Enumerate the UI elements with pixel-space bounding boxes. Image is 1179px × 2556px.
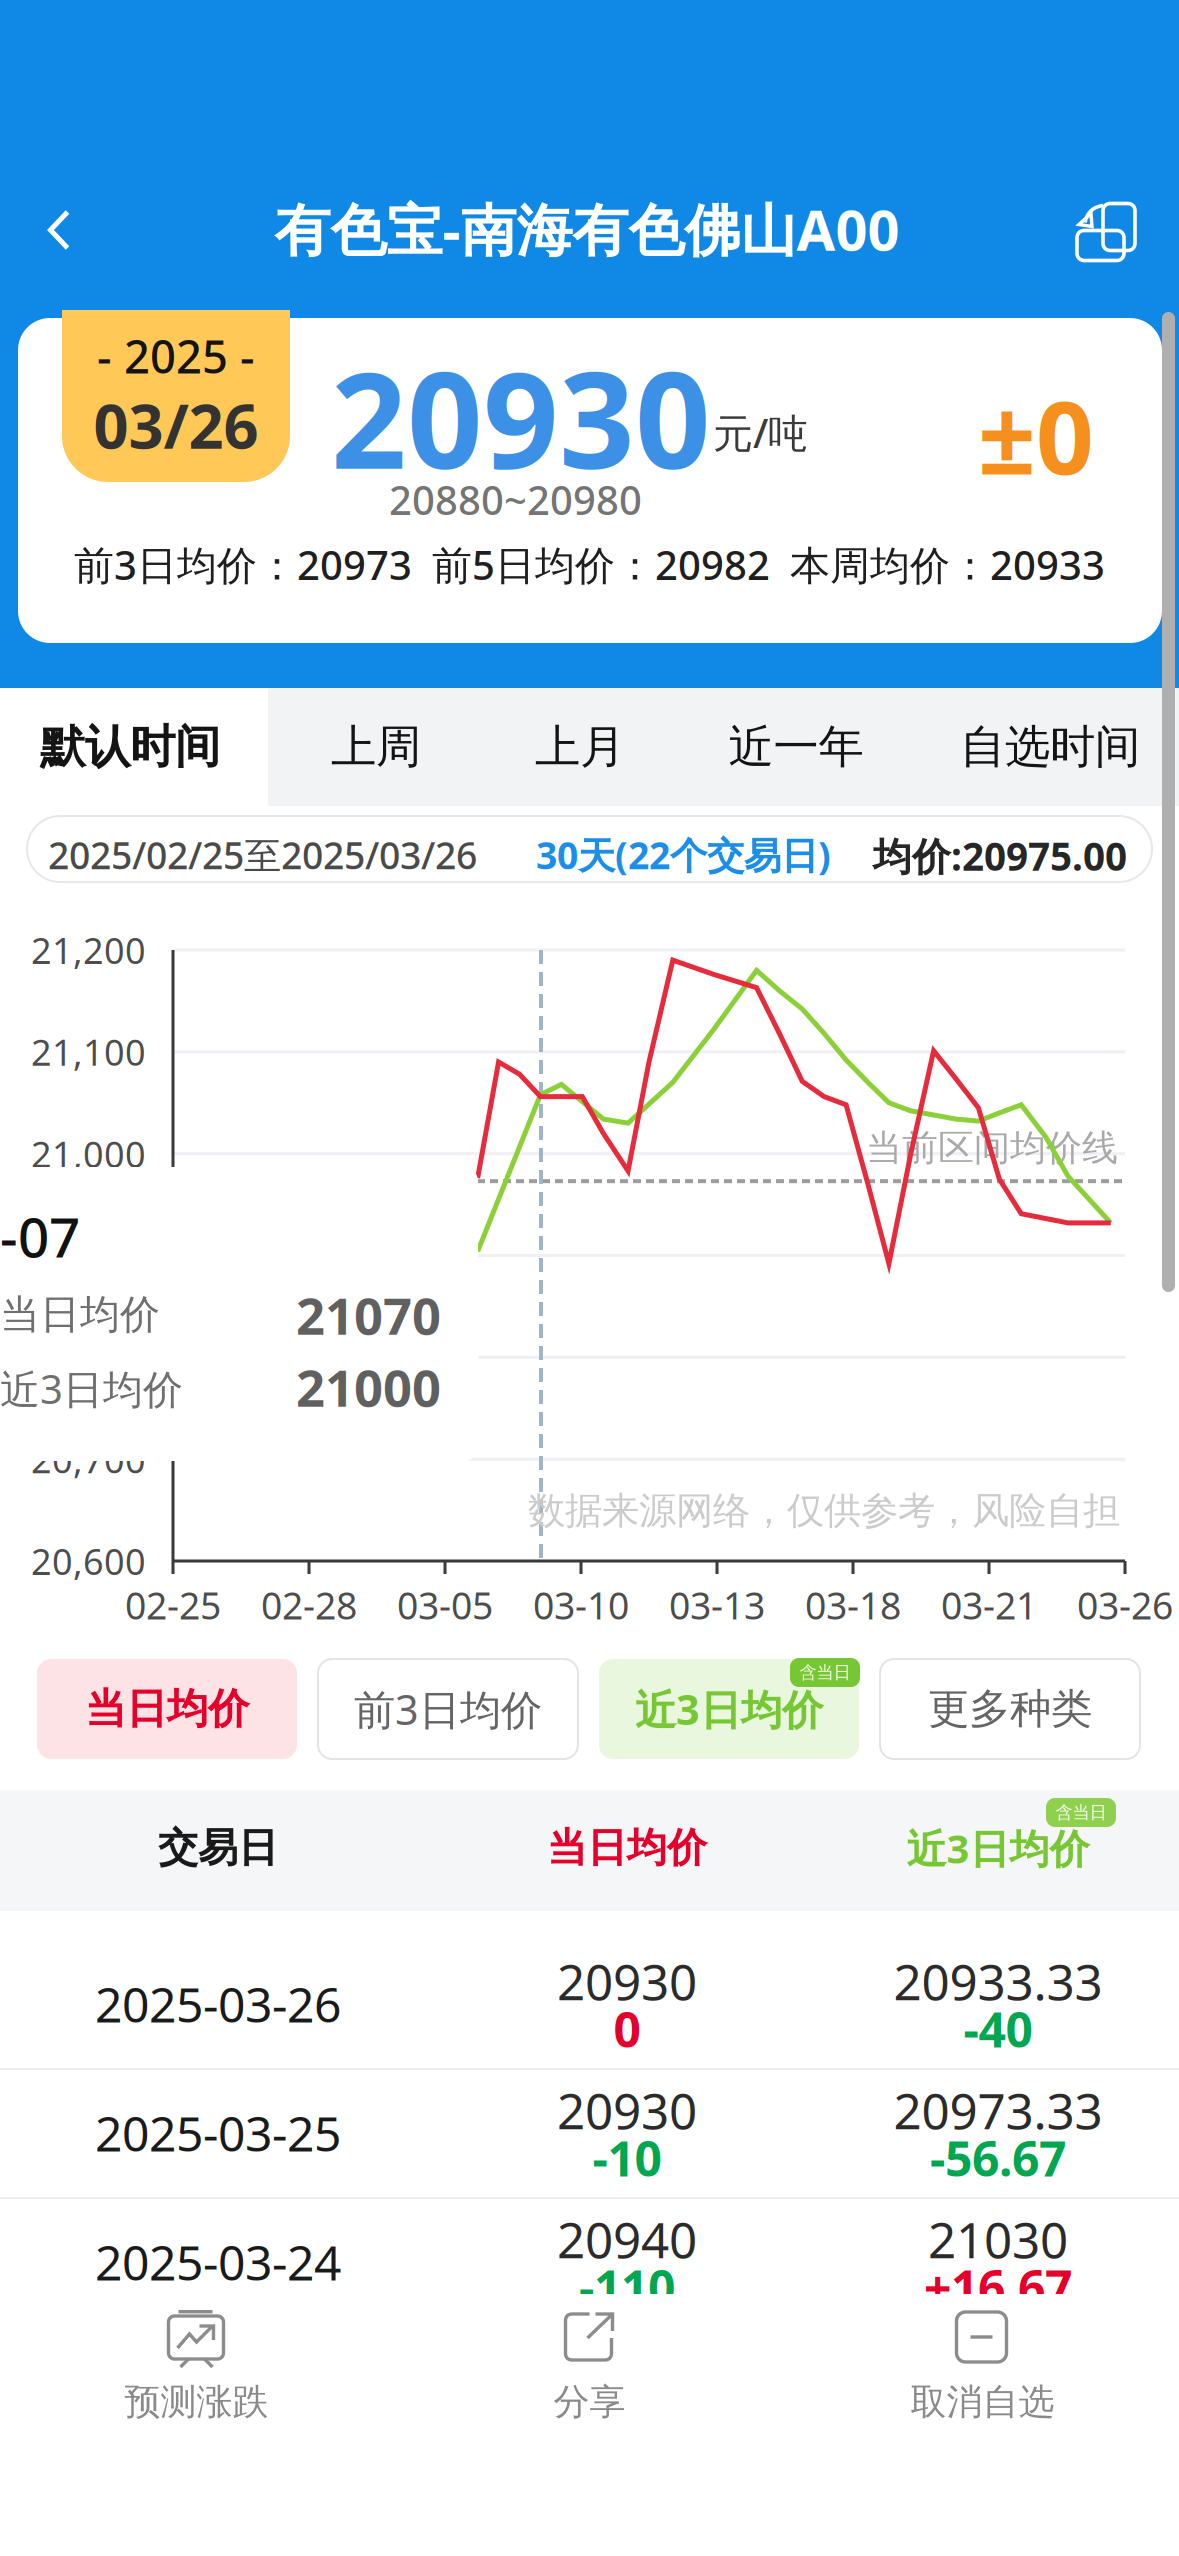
staticText: -10: [592, 2126, 661, 2190]
button[interactable]: 取消自选: [786, 2294, 1179, 2454]
staticText: 03-05: [397, 1580, 493, 1630]
button[interactable]: 切换品种: [1056, 182, 1156, 282]
staticText: 默认时间: [40, 719, 220, 775]
staticText: 2025-03-25: [95, 2101, 341, 2165]
staticText: 20940: [557, 2206, 697, 2272]
staticText: 近3日均价: [0, 1362, 183, 1415]
staticText: -40: [963, 1997, 1032, 2061]
staticText: 03/26: [93, 384, 258, 466]
staticText: 2025-03-26: [95, 1972, 341, 2036]
button[interactable]: 当日均价: [37, 1659, 297, 1759]
staticText: 前3日均价: [354, 1682, 542, 1736]
staticText: 前3日均价：20973 前5日均价：20982 本周均价：20933: [74, 538, 1105, 591]
staticText: 当前区间均价线: [866, 1126, 1118, 1170]
staticText: 03-13: [669, 1580, 765, 1630]
staticText: 更多种类: [928, 1684, 1092, 1734]
staticText: -110: [579, 2255, 675, 2319]
staticText: 21030: [928, 2206, 1068, 2272]
staticText: 03-21: [941, 1580, 1037, 1630]
staticText: 21,000: [31, 1130, 146, 1178]
staticText: 21,200: [31, 926, 146, 974]
staticText: 03-26: [1077, 1580, 1173, 1630]
staticText: 均价:20975.00: [873, 830, 1127, 881]
staticText: - 2025 -: [97, 326, 255, 386]
staticText: +16.67: [924, 2255, 1072, 2319]
staticText: 20,600: [31, 1537, 146, 1585]
staticText: 2025-03-24: [95, 2230, 341, 2294]
button[interactable]: 上周: [0, 688, 216, 806]
staticText: 20,700: [31, 1435, 146, 1483]
button[interactable]: 近一年: [0, 688, 216, 806]
staticText: 近3日均价: [906, 1821, 1089, 1874]
staticText: 2025/02/25至2025/03/26: [48, 830, 477, 880]
staticText: 自选时间: [960, 719, 1140, 775]
staticText: 上月: [535, 719, 625, 775]
staticText: 当日均价: [85, 1684, 249, 1734]
staticText: 20930: [331, 330, 711, 505]
button[interactable]: 默认时间: [0, 688, 268, 806]
staticText: -07: [0, 1200, 80, 1273]
staticText: ±0: [978, 368, 1094, 503]
button[interactable]: 前3日均价: [318, 1659, 578, 1759]
staticText: 取消自选: [910, 2380, 1054, 2424]
staticText: 02-28: [261, 1580, 357, 1630]
staticText: 21,100: [31, 1028, 146, 1076]
staticText: 20933.33: [893, 1948, 1102, 2014]
staticText: 21000: [296, 1353, 441, 1421]
staticText: 含当日: [799, 1662, 850, 1683]
staticText: 当日均价: [547, 1823, 707, 1872]
staticText: 02-25: [125, 1580, 221, 1630]
button[interactable]: 分享: [393, 2294, 786, 2454]
staticText: 上周: [331, 719, 421, 775]
button[interactable]: 预测涨跌: [0, 2294, 393, 2454]
staticText: 21070: [296, 1281, 441, 1349]
staticText: 交易日: [158, 1823, 278, 1872]
staticText: 元/吨: [713, 406, 808, 459]
staticText: 20930: [557, 1948, 697, 2014]
staticText: 03-10: [533, 1580, 629, 1630]
button[interactable]: 更多种类: [880, 1659, 1140, 1759]
staticText: 近一年: [728, 719, 863, 775]
staticText: 20880~20980: [389, 473, 642, 526]
staticText: 20,800: [31, 1333, 146, 1381]
button[interactable]: 自选时间: [0, 688, 216, 806]
button[interactable]: 上月: [0, 688, 216, 806]
staticText: 当日均价: [0, 1290, 160, 1339]
staticText: 近3日均价: [635, 1682, 823, 1736]
staticText: 分享: [553, 2380, 625, 2424]
button[interactable]: 返回: [12, 180, 106, 280]
staticText: 30天(22个交易日): [536, 830, 831, 880]
staticText: 20930: [557, 2077, 697, 2143]
staticText: -56.67: [930, 2126, 1066, 2190]
staticText: 有色宝-南海有色佛山A00: [274, 192, 899, 266]
staticText: 0: [613, 1997, 640, 2061]
button[interactable]: 近3日均价: [599, 1659, 859, 1759]
staticText: 含当日: [1055, 1802, 1106, 1823]
staticText: 预测涨跌: [124, 2380, 268, 2424]
staticText: 20973.33: [893, 2077, 1102, 2143]
staticText: 03-18: [805, 1580, 901, 1630]
staticText: 20,900: [31, 1232, 146, 1279]
staticText: 数据来源网络，仅供参考，风险自担: [528, 1488, 1120, 1534]
